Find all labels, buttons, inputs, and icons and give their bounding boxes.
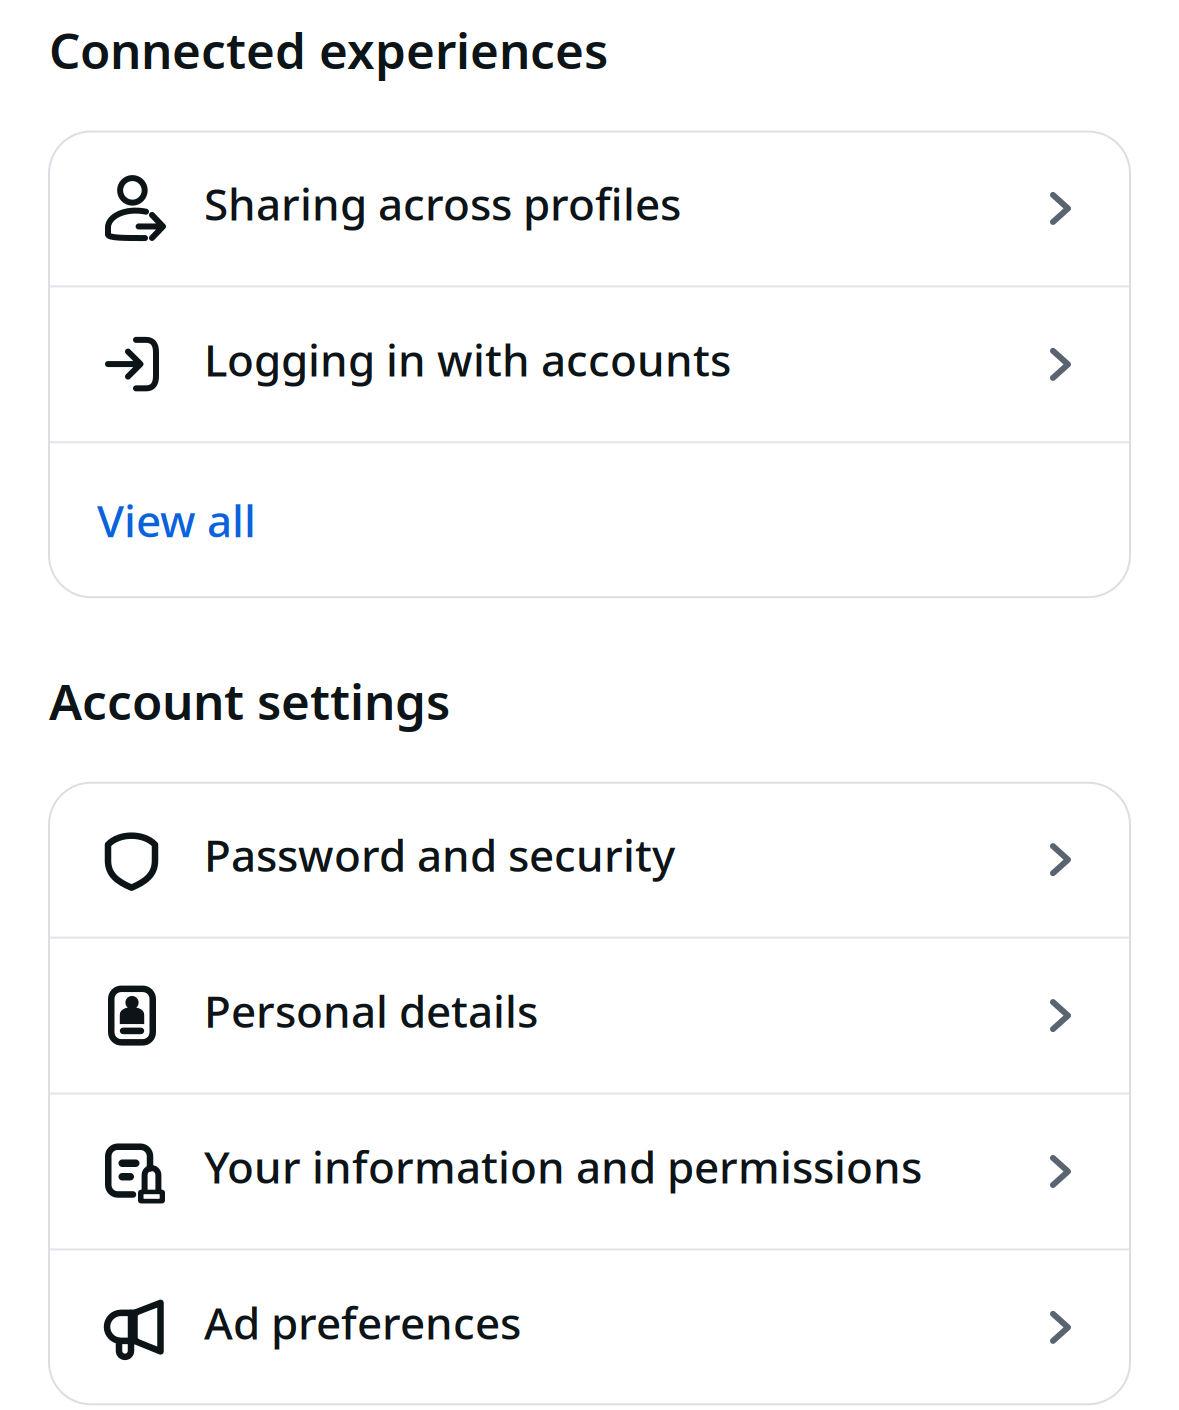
button[interactable]: Sharing across profiles: [49, 131, 1130, 285]
staticText: Connected experiences: [49, 17, 608, 82]
button[interactable]: Your information and permissions: [49, 1094, 1130, 1248]
staticText: Personal details: [204, 981, 538, 1040]
staticText: Your information and permissions: [204, 1137, 922, 1196]
button[interactable]: Personal details: [49, 939, 1130, 1092]
staticText: View all: [97, 491, 256, 549]
button[interactable]: View all: [49, 443, 1130, 597]
staticText: Account settings: [49, 668, 450, 734]
staticText: Logging in with accounts: [204, 330, 731, 388]
staticText: Sharing across profiles: [204, 174, 681, 233]
button[interactable]: Ad preferences: [49, 1250, 1130, 1404]
staticText: Ad preferences: [204, 1293, 521, 1352]
button[interactable]: Logging in with accounts: [49, 287, 1130, 441]
button[interactable]: Password and security: [49, 783, 1130, 937]
staticText: Password and security: [204, 825, 675, 884]
